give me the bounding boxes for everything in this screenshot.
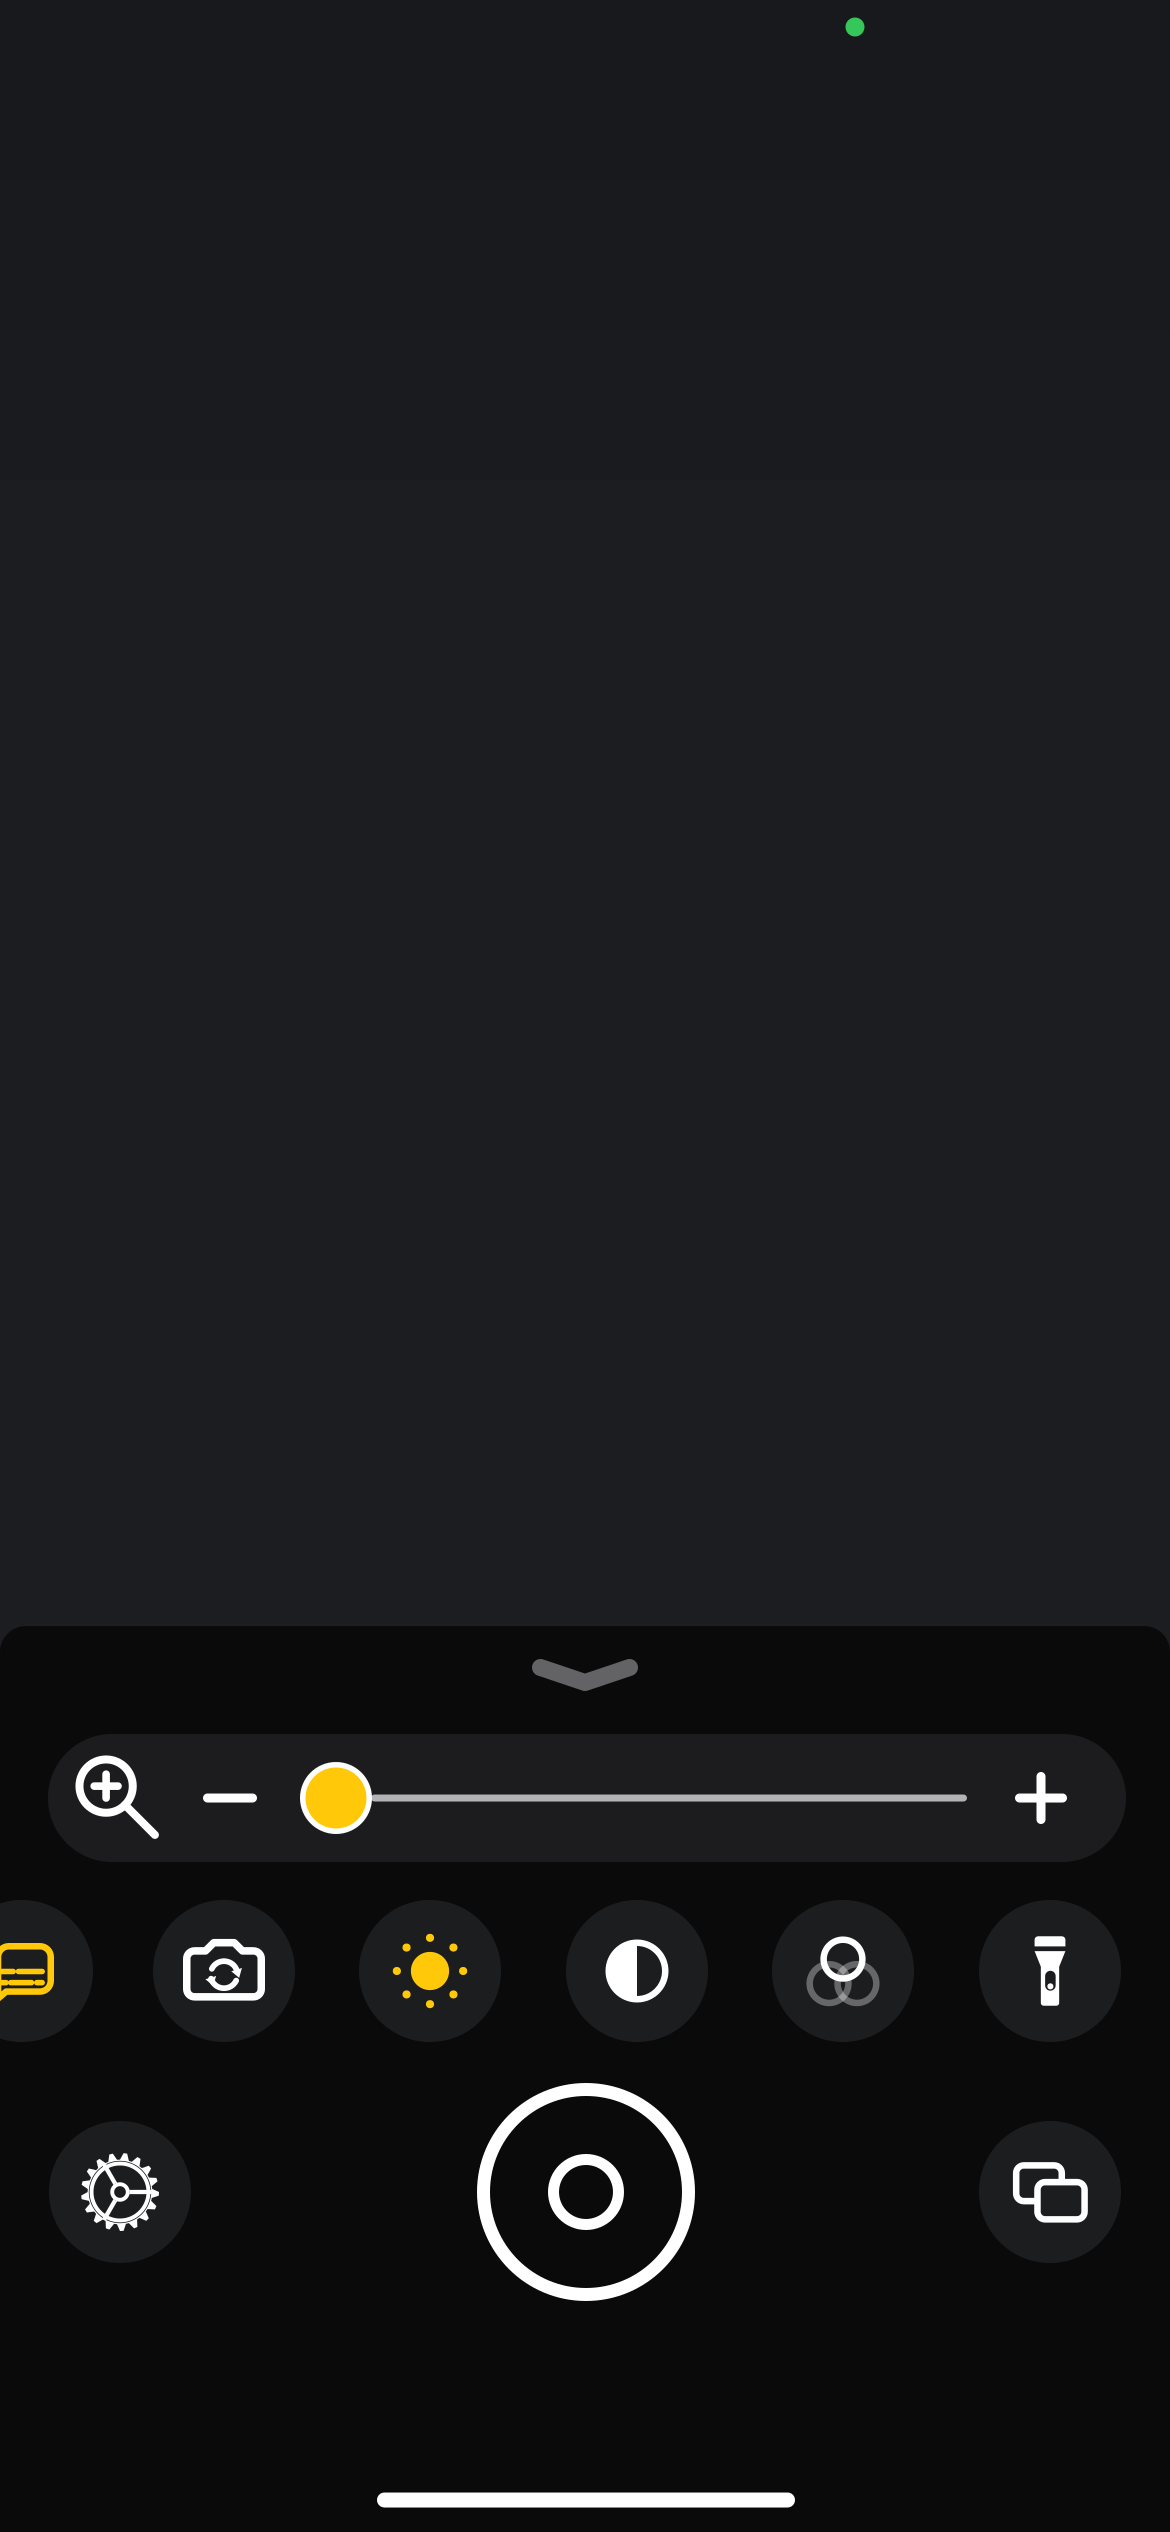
button[interactable]: Brightness — [359, 1900, 501, 2042]
button[interactable]: Hide Controls — [475, 1627, 695, 1723]
button[interactable]: Zoom Out — [182, 1750, 278, 1846]
button[interactable]: Zoom In — [993, 1750, 1089, 1846]
button[interactable]: Text Detection — [0, 1900, 93, 2042]
button[interactable]: Filters — [772, 1900, 914, 2042]
button[interactable]: Flashlight — [979, 1900, 1121, 2042]
button[interactable]: Switch Camera — [153, 1900, 295, 2042]
button[interactable]: Multi Window — [979, 2121, 1121, 2263]
button[interactable]: Freeze Frame — [468, 2074, 704, 2310]
button[interactable]: Settings — [49, 2121, 191, 2263]
button[interactable]: Contrast — [566, 1900, 708, 2042]
